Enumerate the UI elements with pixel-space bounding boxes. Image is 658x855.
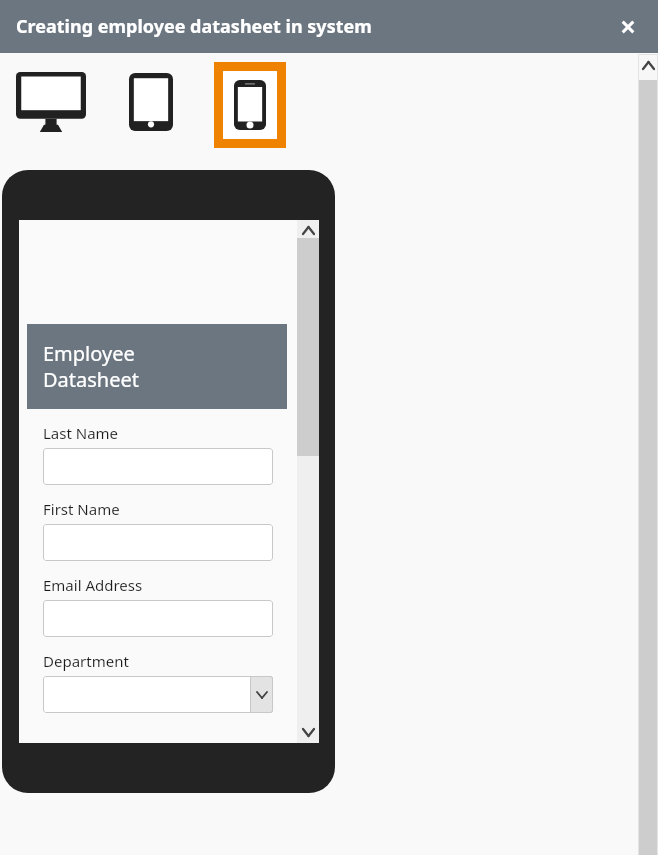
button[interactable]: Desktop preview bbox=[10, 62, 92, 142]
button[interactable] bbox=[43, 448, 273, 485]
button[interactable] bbox=[43, 600, 273, 637]
staticText: Email Address bbox=[43, 575, 143, 595]
staticText: Employee Datasheet bbox=[43, 340, 139, 393]
button[interactable]: Close bbox=[614, 13, 642, 41]
staticText: Department bbox=[43, 651, 129, 671]
button[interactable]: Phone preview, selected bbox=[223, 71, 277, 139]
staticText: First Name bbox=[43, 499, 120, 519]
button[interactable]: Tablet preview bbox=[120, 62, 182, 142]
button[interactable]: Page scroll up bbox=[638, 54, 658, 76]
button[interactable]: Scroll down bbox=[297, 724, 319, 740]
staticText: Last Name bbox=[43, 423, 119, 443]
button[interactable]: Scroll up bbox=[297, 222, 319, 238]
button[interactable] bbox=[43, 676, 273, 713]
staticText: Creating employee datasheet in system bbox=[16, 14, 372, 39]
button[interactable] bbox=[43, 524, 273, 561]
